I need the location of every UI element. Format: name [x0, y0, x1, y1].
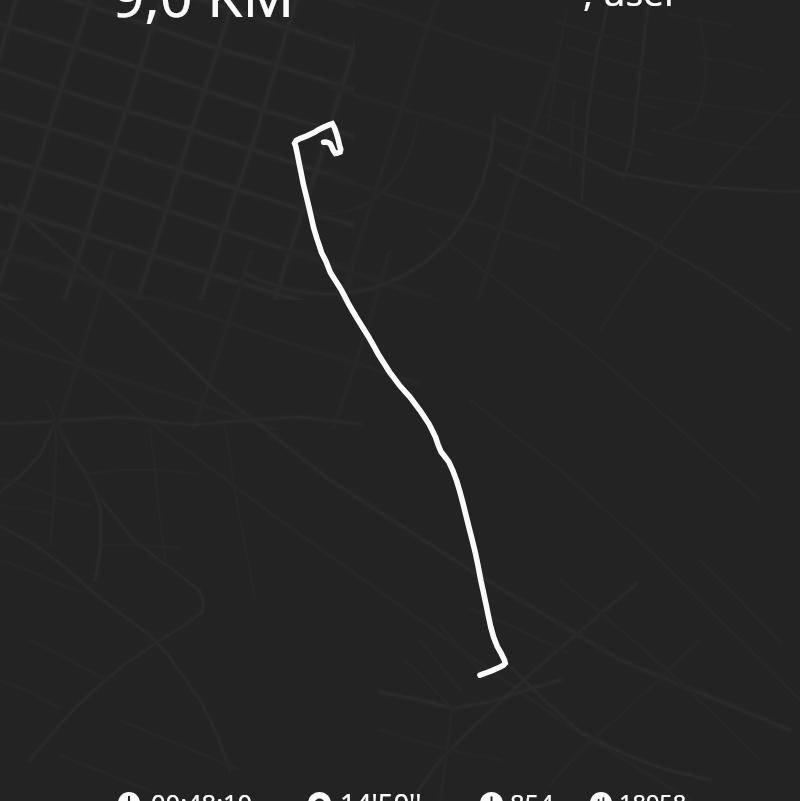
staticText: , user	[583, 0, 680, 16]
staticText: 9,0 KM	[112, 0, 295, 34]
staticText: 854	[510, 786, 554, 801]
button[interactable]: Calories burned	[480, 792, 503, 801]
other: Calories burned	[480, 792, 503, 801]
button[interactable]: Duration	[118, 792, 140, 801]
staticText: 14'50''	[340, 785, 422, 801]
other: Steps	[590, 792, 612, 801]
staticText: 00:48:10	[151, 786, 253, 801]
button[interactable]: Average pace	[308, 792, 331, 801]
other: Duration	[118, 792, 140, 801]
other: Average pace	[308, 792, 331, 801]
staticText: 18958	[619, 787, 687, 801]
button[interactable]: Steps	[590, 792, 612, 801]
